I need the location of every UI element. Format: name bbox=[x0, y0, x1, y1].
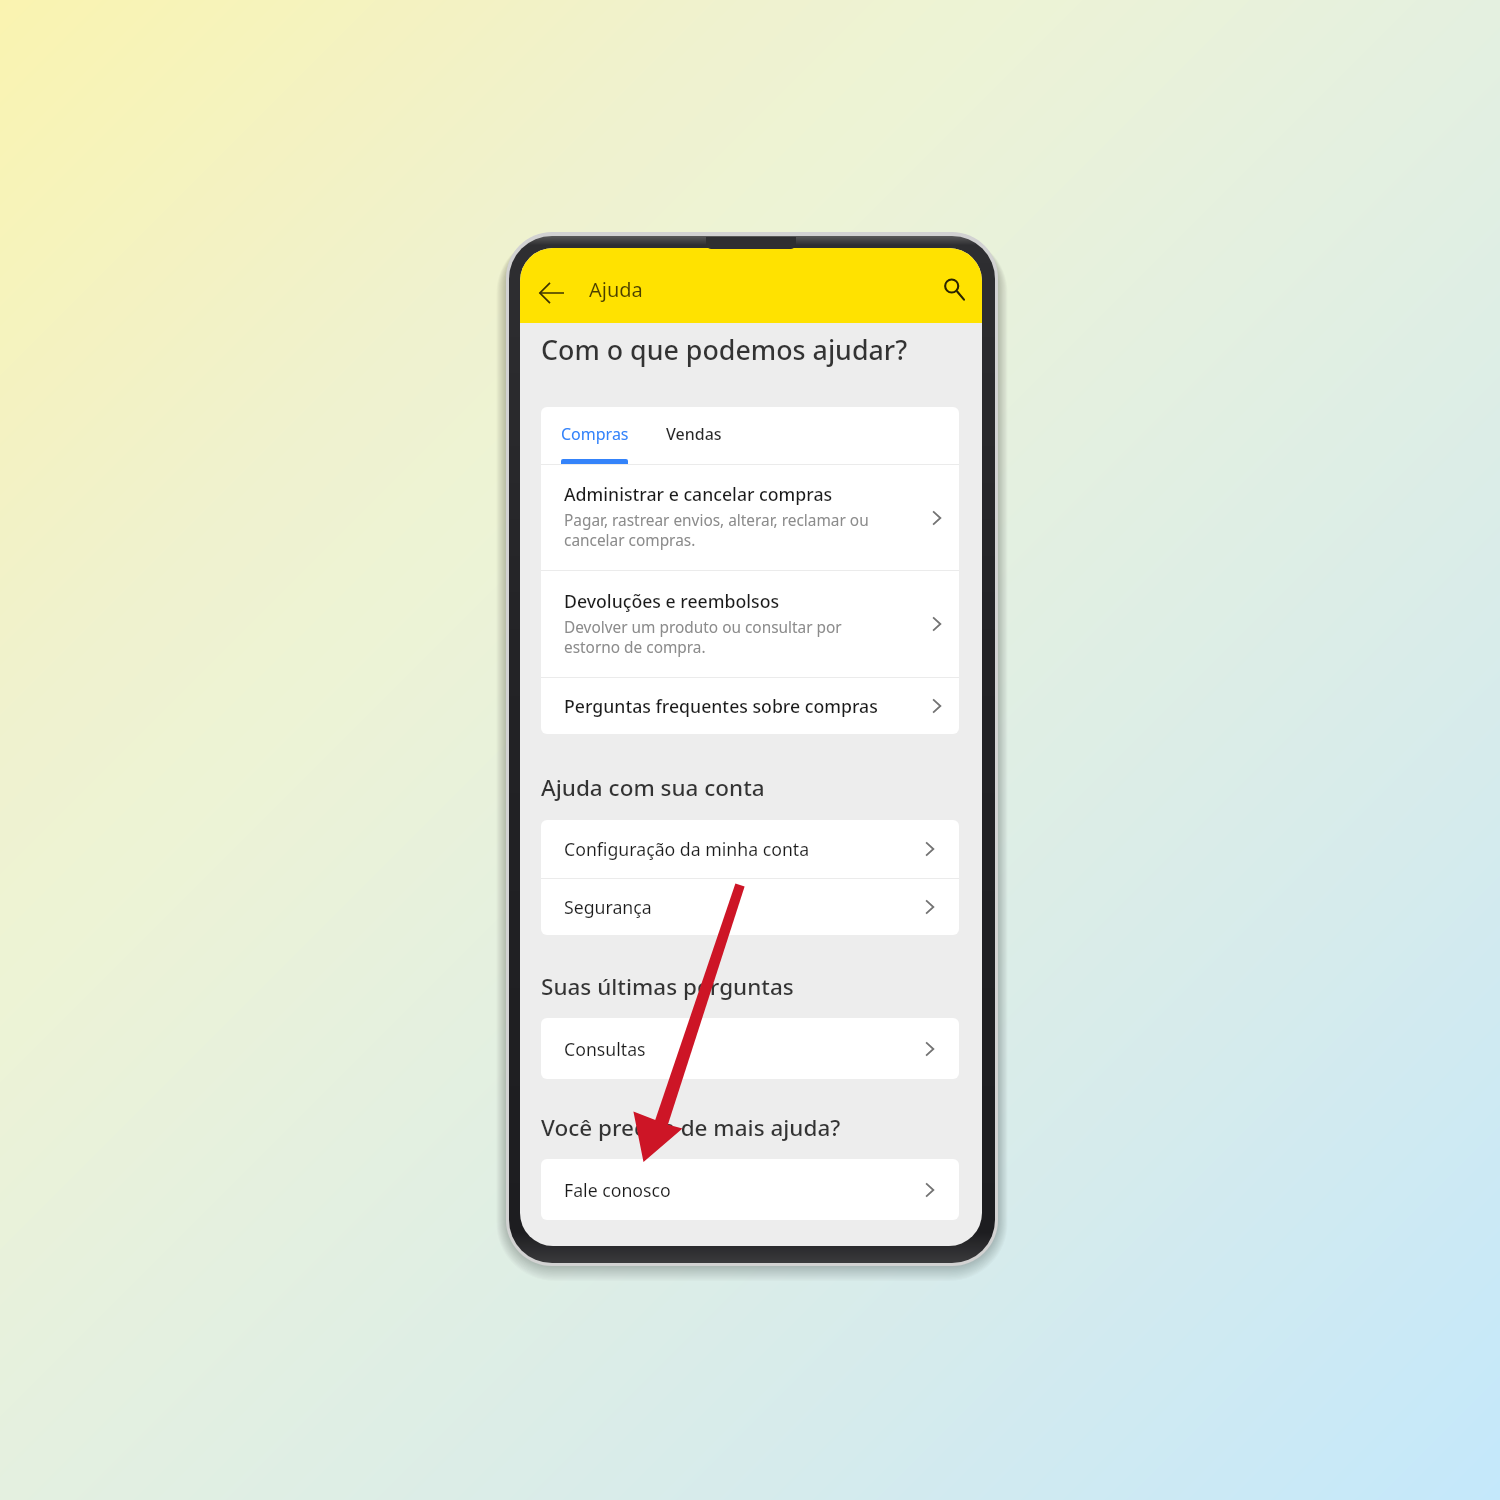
staticText: Devolver um produto ou consultar por est… bbox=[564, 617, 842, 658]
staticText: Vendas bbox=[666, 423, 722, 445]
button[interactable]: Vendas bbox=[658, 407, 730, 464]
button[interactable]: Perguntas frequentes sobre compras bbox=[541, 678, 959, 734]
button[interactable]: Compras bbox=[553, 407, 637, 464]
staticText: Pagar, rastrear envios, alterar, reclama… bbox=[564, 510, 869, 551]
staticText: Consultas bbox=[564, 1037, 923, 1061]
staticText: Fale conosco bbox=[564, 1178, 923, 1202]
staticText: Suas últimas perguntas bbox=[541, 971, 794, 1002]
button[interactable]: Voltar bbox=[529, 270, 574, 315]
staticText: Administrar e cancelar compras bbox=[564, 482, 833, 506]
staticText: Perguntas frequentes sobre compras bbox=[564, 694, 930, 718]
staticText: Com o que podemos ajudar? bbox=[541, 331, 908, 368]
button[interactable]: Consultas bbox=[541, 1018, 959, 1079]
staticText: Compras bbox=[561, 423, 629, 445]
staticText: Você precisa de mais ajuda? bbox=[541, 1112, 841, 1143]
button[interactable]: Buscar bbox=[933, 268, 975, 310]
button[interactable]: Configuração da minha conta bbox=[541, 820, 959, 878]
staticText: Ajuda com sua conta bbox=[541, 772, 765, 803]
staticText: Ajuda bbox=[589, 276, 643, 303]
staticText: Configuração da minha conta bbox=[564, 837, 923, 861]
button[interactable]: Segurança bbox=[541, 879, 959, 935]
staticText: Devoluções e reembolsos bbox=[564, 589, 780, 613]
button[interactable]: Administrar e cancelar compras bbox=[541, 465, 959, 570]
button[interactable]: Devoluções e reembolsos bbox=[541, 571, 959, 677]
staticText: Segurança bbox=[564, 895, 923, 919]
button[interactable]: Fale conosco bbox=[541, 1159, 959, 1220]
